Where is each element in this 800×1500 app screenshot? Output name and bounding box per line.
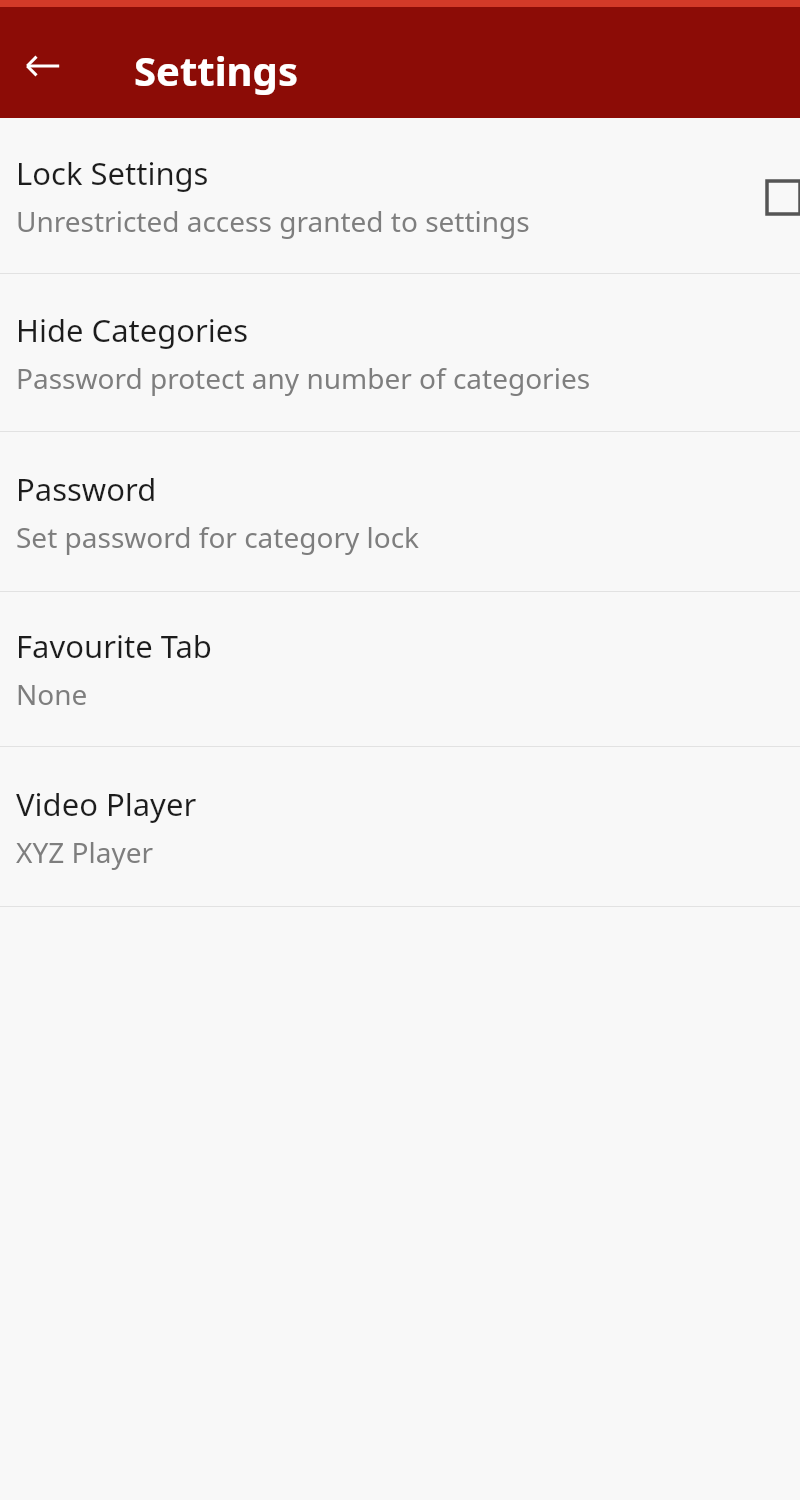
staticText: Unrestricted access granted to settings bbox=[16, 202, 530, 240]
staticText: Set password for category lock bbox=[16, 518, 420, 556]
button[interactable]: Password bbox=[0, 432, 800, 591]
staticText: Password bbox=[16, 468, 157, 510]
staticText: Lock Settings bbox=[16, 152, 209, 194]
staticText: Video Player bbox=[16, 783, 197, 825]
button[interactable]: Lock Settings bbox=[0, 118, 800, 273]
staticText: Settings bbox=[134, 43, 298, 97]
staticText: XYZ Player bbox=[16, 833, 154, 871]
staticText: Hide Categories bbox=[16, 309, 249, 351]
staticText: Password protect any number of categorie… bbox=[16, 359, 591, 397]
staticText: None bbox=[16, 675, 88, 713]
button[interactable]: Back bbox=[13, 36, 73, 96]
staticText: Favourite Tab bbox=[16, 625, 212, 667]
button[interactable]: Lock settings checkbox bbox=[752, 166, 800, 228]
button[interactable]: Hide Categories bbox=[0, 274, 800, 431]
button[interactable]: Favourite Tab bbox=[0, 592, 800, 746]
button[interactable]: Video Player bbox=[0, 747, 800, 906]
